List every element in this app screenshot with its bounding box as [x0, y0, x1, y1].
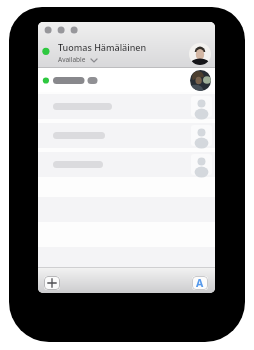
- button[interactable]: [38, 94, 215, 119]
- button[interactable]: [44, 276, 60, 290]
- button[interactable]: [38, 68, 215, 92]
- staticText: Available: [58, 55, 86, 64]
- staticText: Tuomas Hämäläinen: [58, 41, 147, 53]
- button[interactable]: [189, 43, 211, 65]
- staticText: A: [196, 276, 204, 290]
- button[interactable]: Tuomas Hämäläinen: [58, 41, 147, 64]
- button[interactable]: [38, 152, 215, 177]
- button[interactable]: A: [192, 276, 208, 290]
- button[interactable]: [38, 123, 215, 148]
